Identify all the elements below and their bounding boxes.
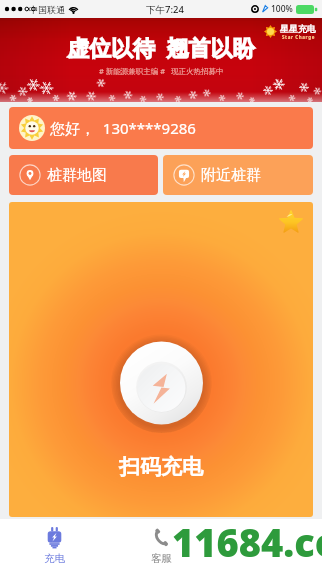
button[interactable]: 桩群地图 (9, 155, 158, 195)
staticText: 附近桩群 (201, 166, 261, 185)
button[interactable]: 客服 (108, 519, 215, 572)
staticText: 您好， 130****9286 (50, 118, 196, 138)
staticText: 中国联通 (29, 4, 65, 15)
staticText: 客服 (151, 552, 172, 565)
button[interactable]: 附近桩群 (163, 155, 313, 195)
staticText: 虚位以待 翘首以盼 (67, 32, 255, 62)
staticText: 下午7:24 (146, 3, 184, 16)
staticText: # 新能源兼职主编 # 现正火热招募中 (99, 66, 224, 76)
staticText: 扫码充电 (9, 454, 313, 480)
button[interactable]: 扫码充电 (111, 332, 212, 433)
button[interactable]: 充电 (0, 519, 108, 572)
button[interactable]: Star (277, 208, 305, 236)
staticText: 桩群地图 (47, 166, 107, 185)
staticText: 100% (271, 3, 293, 15)
staticText: 11684.com (172, 516, 322, 568)
staticText: 充电 (44, 552, 65, 565)
button[interactable]: 您好， 130****9286 (9, 107, 313, 149)
button[interactable]: 星星充电 (0, 18, 322, 102)
staticText: 星星充电 (280, 23, 316, 34)
button[interactable]: Star (9, 202, 313, 517)
staticText: Star Charge (282, 34, 315, 40)
